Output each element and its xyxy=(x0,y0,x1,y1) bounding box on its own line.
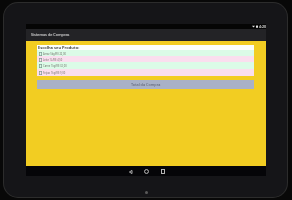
button[interactable]: Carne 1kg/R$ 32,00 xyxy=(37,62,254,69)
button[interactable]: Recent apps xyxy=(160,169,165,174)
staticText: Feijao 1kg/R$ 9,00 xyxy=(43,71,66,75)
button[interactable]: Home xyxy=(144,169,149,174)
staticText: Sistemas de Compras xyxy=(31,32,70,37)
staticText: 4:20 xyxy=(259,24,267,29)
button[interactable]: Feijao 1kg/R$ 9,00 xyxy=(37,69,254,76)
staticText: Arroz 5kg/R$ 22,00 xyxy=(43,52,67,56)
button[interactable]: Back xyxy=(128,169,133,174)
staticText: Carne 1kg/R$ 32,00 xyxy=(43,64,67,68)
button[interactable]: Arroz 5kg/R$ 22,00 xyxy=(37,50,254,57)
button[interactable]: Total da Compra xyxy=(37,80,254,89)
staticText: Escolha seu Produto: xyxy=(38,45,80,50)
staticText: Leite 1L/R$ 4,50 xyxy=(43,58,63,62)
button[interactable]: Leite 1L/R$ 4,50 xyxy=(37,56,254,63)
staticText: Total da Compra xyxy=(131,82,161,87)
